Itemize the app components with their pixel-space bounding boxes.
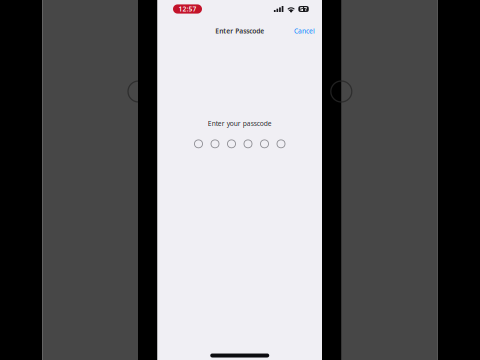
button[interactable]: Passcode, 6 digits, empty — [194, 138, 285, 150]
staticText: Enter Passcode — [215, 27, 264, 35]
button[interactable]: Screen recording in progress, 12:57 — [173, 4, 202, 14]
staticText: 12:57 — [178, 5, 196, 13]
staticText: Cancel — [294, 27, 315, 35]
button[interactable]: Cancel — [291, 24, 318, 38]
staticText: Enter your passcode — [208, 119, 272, 128]
